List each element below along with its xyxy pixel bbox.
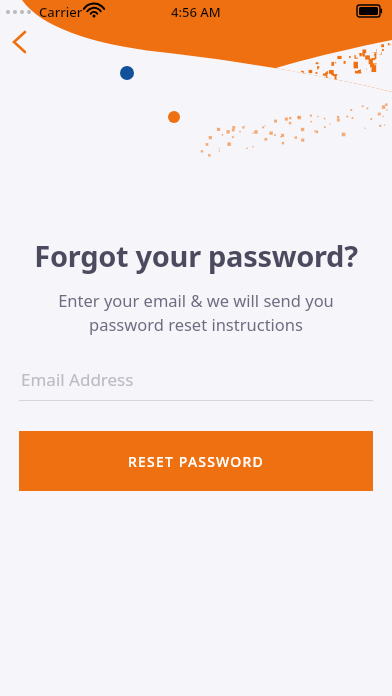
staticText: Enter your email & we will send you pass…	[0, 289, 392, 336]
staticText: Carrier	[39, 3, 83, 21]
staticText: RESET PASSWORD	[128, 452, 264, 471]
staticText: Email Address	[21, 368, 134, 391]
staticText: Forgot your password?	[0, 236, 392, 275]
staticText: 4:56 AM	[171, 3, 221, 21]
button[interactable]: Back	[2, 22, 42, 62]
button[interactable]: Email Address	[19, 368, 373, 401]
button[interactable]: RESET PASSWORD	[19, 431, 373, 491]
